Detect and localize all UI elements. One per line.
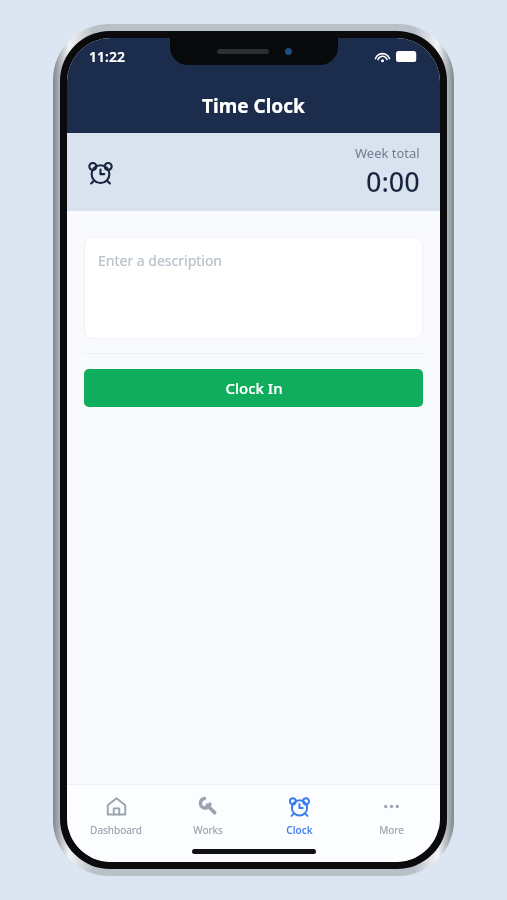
staticText: Works [193, 823, 223, 837]
staticText: Enter a description [98, 251, 223, 270]
button[interactable]: Clock In [84, 369, 423, 407]
button[interactable]: More [348, 792, 434, 840]
other: Alarm [87, 159, 114, 186]
staticText: Time Clock [202, 93, 305, 119]
staticText: Clock In [225, 378, 283, 398]
staticText: 11:22 [89, 47, 125, 66]
button[interactable]: Enter a description [84, 237, 423, 339]
button[interactable]: Clock [256, 792, 342, 840]
staticText: Week total [355, 144, 420, 162]
staticText: Clock [286, 823, 313, 837]
staticText: More [379, 823, 404, 837]
staticText: 0:00 [366, 163, 420, 200]
staticText: Dashboard [90, 823, 142, 837]
button[interactable]: Dashboard [73, 792, 159, 840]
button[interactable]: Works [165, 792, 251, 840]
